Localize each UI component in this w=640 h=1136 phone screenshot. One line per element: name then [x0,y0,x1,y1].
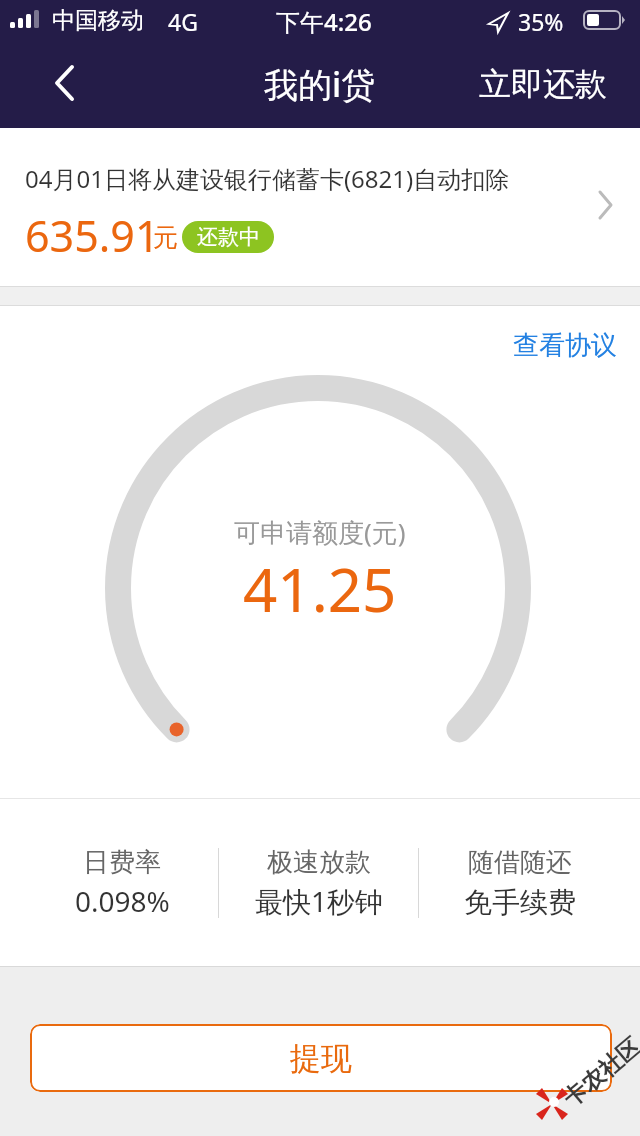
button[interactable]: 立即还款 [479,40,640,128]
staticText: 查看协议 [513,329,617,362]
staticText: 还款中 [197,224,260,250]
staticText: 中国移动 [52,6,144,35]
staticText: 635.91 [25,206,160,265]
staticText: 免手续费 [464,885,576,920]
staticText: 提现 [290,1039,352,1078]
staticText: 最快1秒钟 [255,882,384,920]
staticText: 35% [518,6,564,37]
staticText: 0.098% [75,882,170,920]
button[interactable] [30,48,100,120]
staticText: 可申请额度(元) [234,514,406,550]
staticText: 日费率 [83,846,161,879]
staticText: 极速放款 [267,846,371,879]
button[interactable]: 查看协议 [490,322,640,368]
staticText: 41.25 [243,548,397,630]
staticText: 随借随还 [468,846,572,879]
staticText: 我的i贷 [264,61,376,107]
staticText: 元 [153,222,178,253]
button[interactable]: 04月01日将从建设银行储蓄卡(6821)自动扣除 [0,128,640,286]
staticText: 04月01日将从建设银行储蓄卡(6821)自动扣除 [25,162,510,195]
staticText: 立即还款 [479,64,607,104]
button[interactable]: 提现 [30,1024,612,1092]
staticText: 下午4:26 [276,5,372,38]
staticText: 4G [168,6,198,37]
staticText: 卡农社区 [557,1032,640,1113]
